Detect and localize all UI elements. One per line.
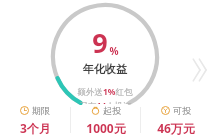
staticText: 额外送1%红包 xyxy=(77,86,133,98)
staticText: 46万元 xyxy=(157,120,195,136)
staticText: 3个月 xyxy=(20,120,51,136)
button[interactable]: 起投 xyxy=(71,100,140,140)
staticText: % xyxy=(109,44,119,58)
staticText: 9 xyxy=(92,24,108,61)
staticText: 已有14人投资 xyxy=(79,100,132,104)
button[interactable]: 9 xyxy=(0,0,210,104)
button[interactable]: 可投 xyxy=(141,100,210,140)
button[interactable]: Next xyxy=(190,57,208,83)
staticText: 可投 xyxy=(173,105,191,116)
button[interactable]: 期限 xyxy=(0,100,70,140)
staticText: 期限 xyxy=(32,105,50,116)
staticText: 年化收益 xyxy=(83,62,127,76)
staticText: 起投 xyxy=(103,105,121,116)
staticText: 1000元 xyxy=(86,120,126,136)
